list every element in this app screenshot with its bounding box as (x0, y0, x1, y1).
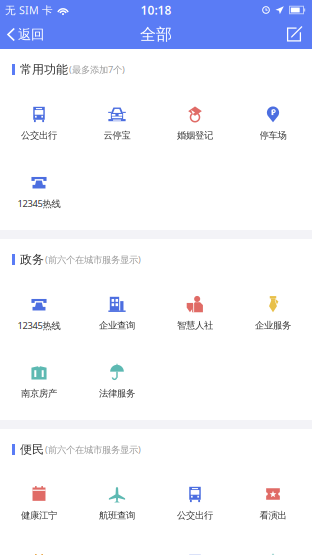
button[interactable]: 健康江宁 (0, 485, 78, 521)
staticText: 法律服务 (99, 388, 135, 399)
button[interactable]: 法律服务 (78, 363, 156, 399)
button[interactable]: 企业查询 (78, 295, 156, 331)
staticText: 返回 (18, 26, 44, 43)
button[interactable]: 公交出行 (0, 105, 78, 141)
staticText: 10:18 (140, 2, 171, 18)
button[interactable]: 公交出行 (156, 485, 234, 521)
button[interactable]: 生活缴费 (0, 553, 78, 555)
staticText: 看演出 (259, 510, 286, 521)
staticText: 婚姻登记 (177, 130, 213, 141)
button[interactable]: 智慧人社 (156, 295, 234, 331)
button[interactable]: 天气查询 (234, 553, 312, 555)
button[interactable]: 云停宝 (78, 105, 156, 141)
button[interactable]: 南京房产 (0, 363, 78, 399)
staticText: 公交出行 (21, 130, 57, 141)
button[interactable]: 看演出 (234, 485, 312, 521)
button[interactable]: 航班查询 (78, 485, 156, 521)
button[interactable]: 婚姻登记 (156, 105, 234, 141)
staticText: 健康江宁 (21, 510, 57, 521)
button[interactable]: 停车场 (234, 105, 312, 141)
staticText: 无 SIM 卡 (5, 3, 53, 17)
staticText: 航班查询 (99, 510, 135, 521)
staticText: 云停宝 (103, 130, 130, 141)
button[interactable]: 12345热线 (0, 295, 78, 331)
staticText: (最多添加7个) (69, 63, 125, 76)
staticText: 停车场 (259, 130, 286, 141)
button[interactable]: Compose (276, 20, 312, 49)
staticText: 全部 (140, 25, 172, 44)
button[interactable]: 12345热线 (0, 173, 78, 209)
staticText: (前六个在城市服务显示) (45, 443, 141, 456)
staticText: 智慧人社 (177, 320, 213, 331)
staticText: 政务 (20, 252, 44, 267)
staticText: (前六个在城市服务显示) (45, 253, 141, 266)
staticText: 企业服务 (255, 320, 291, 331)
staticText: 12345热线 (17, 197, 60, 210)
staticText: 便民 (20, 442, 44, 457)
button[interactable]: 返回 (0, 20, 54, 49)
staticText: 企业查询 (99, 320, 135, 331)
button[interactable]: 地铁出行 (156, 553, 234, 555)
staticText: 12345热线 (17, 319, 60, 332)
staticText: 南京房产 (21, 388, 57, 399)
button[interactable]: 企业服务 (234, 295, 312, 331)
staticText: 常用功能 (20, 62, 68, 77)
staticText: 公交出行 (177, 510, 213, 521)
